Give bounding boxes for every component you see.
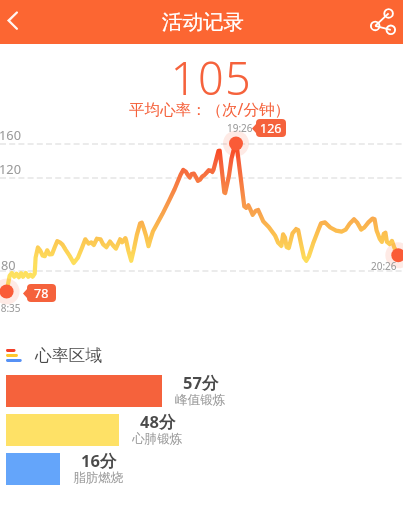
staticText: 峰值锻炼 — [175, 392, 226, 408]
staticText: 脂肪燃烧 — [73, 470, 124, 486]
staticText: 平均心率：（次/分钟） — [8, 98, 403, 119]
staticText: 心率区域 — [35, 345, 103, 366]
staticText: 57分 — [183, 371, 219, 394]
button[interactable]: Share — [363, 0, 403, 44]
staticText: 160 — [0, 126, 21, 143]
staticText: 80 — [1, 256, 16, 273]
button[interactable]: Back — [0, 0, 34, 44]
staticText: 78 — [34, 285, 49, 302]
staticText: 20:26 — [371, 259, 397, 273]
button[interactable]: 57分 — [0, 375, 403, 407]
staticText: 16分 — [81, 449, 117, 472]
staticText: 心肺锻炼 — [132, 431, 183, 447]
staticText: 18:35 — [0, 301, 21, 315]
staticText: 19:26 — [227, 121, 253, 135]
staticText: 活动记录 — [162, 9, 244, 35]
button[interactable]: 48分 — [0, 414, 403, 446]
staticText: 48分 — [140, 410, 176, 433]
button[interactable]: 16分 — [0, 453, 403, 485]
staticText: 105 — [10, 47, 403, 108]
staticText: 120 — [0, 160, 21, 177]
staticText: 126 — [260, 120, 282, 137]
